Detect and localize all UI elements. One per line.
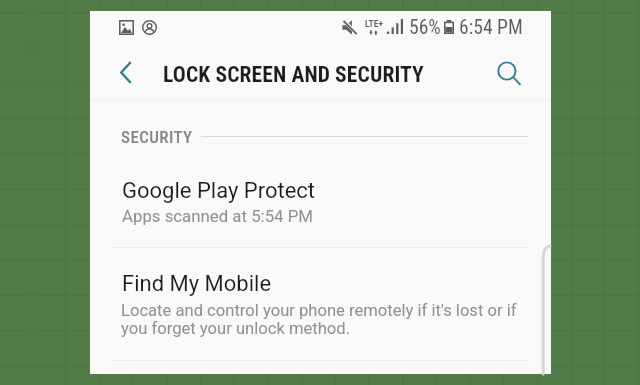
staticText: Find My Mobile: [122, 271, 272, 297]
staticText: SECURITY: [121, 127, 193, 147]
button[interactable]: Find My Mobile: [90, 251, 551, 360]
button[interactable]: Search: [488, 51, 530, 93]
staticText: Locate and control your phone remotely i…: [121, 301, 517, 338]
button[interactable]: Google Play Protect: [90, 158, 551, 247]
button[interactable]: Navigate up: [104, 51, 146, 93]
staticText: 6:54 PM: [459, 16, 523, 39]
staticText: Apps scanned at 5:54 PM: [122, 206, 313, 226]
staticText: LOCK SCREEN AND SECURITY: [163, 62, 424, 87]
staticText: Google Play Protect: [122, 178, 316, 204]
staticText: 56%: [409, 16, 441, 39]
staticText: LTE+: [365, 19, 384, 29]
